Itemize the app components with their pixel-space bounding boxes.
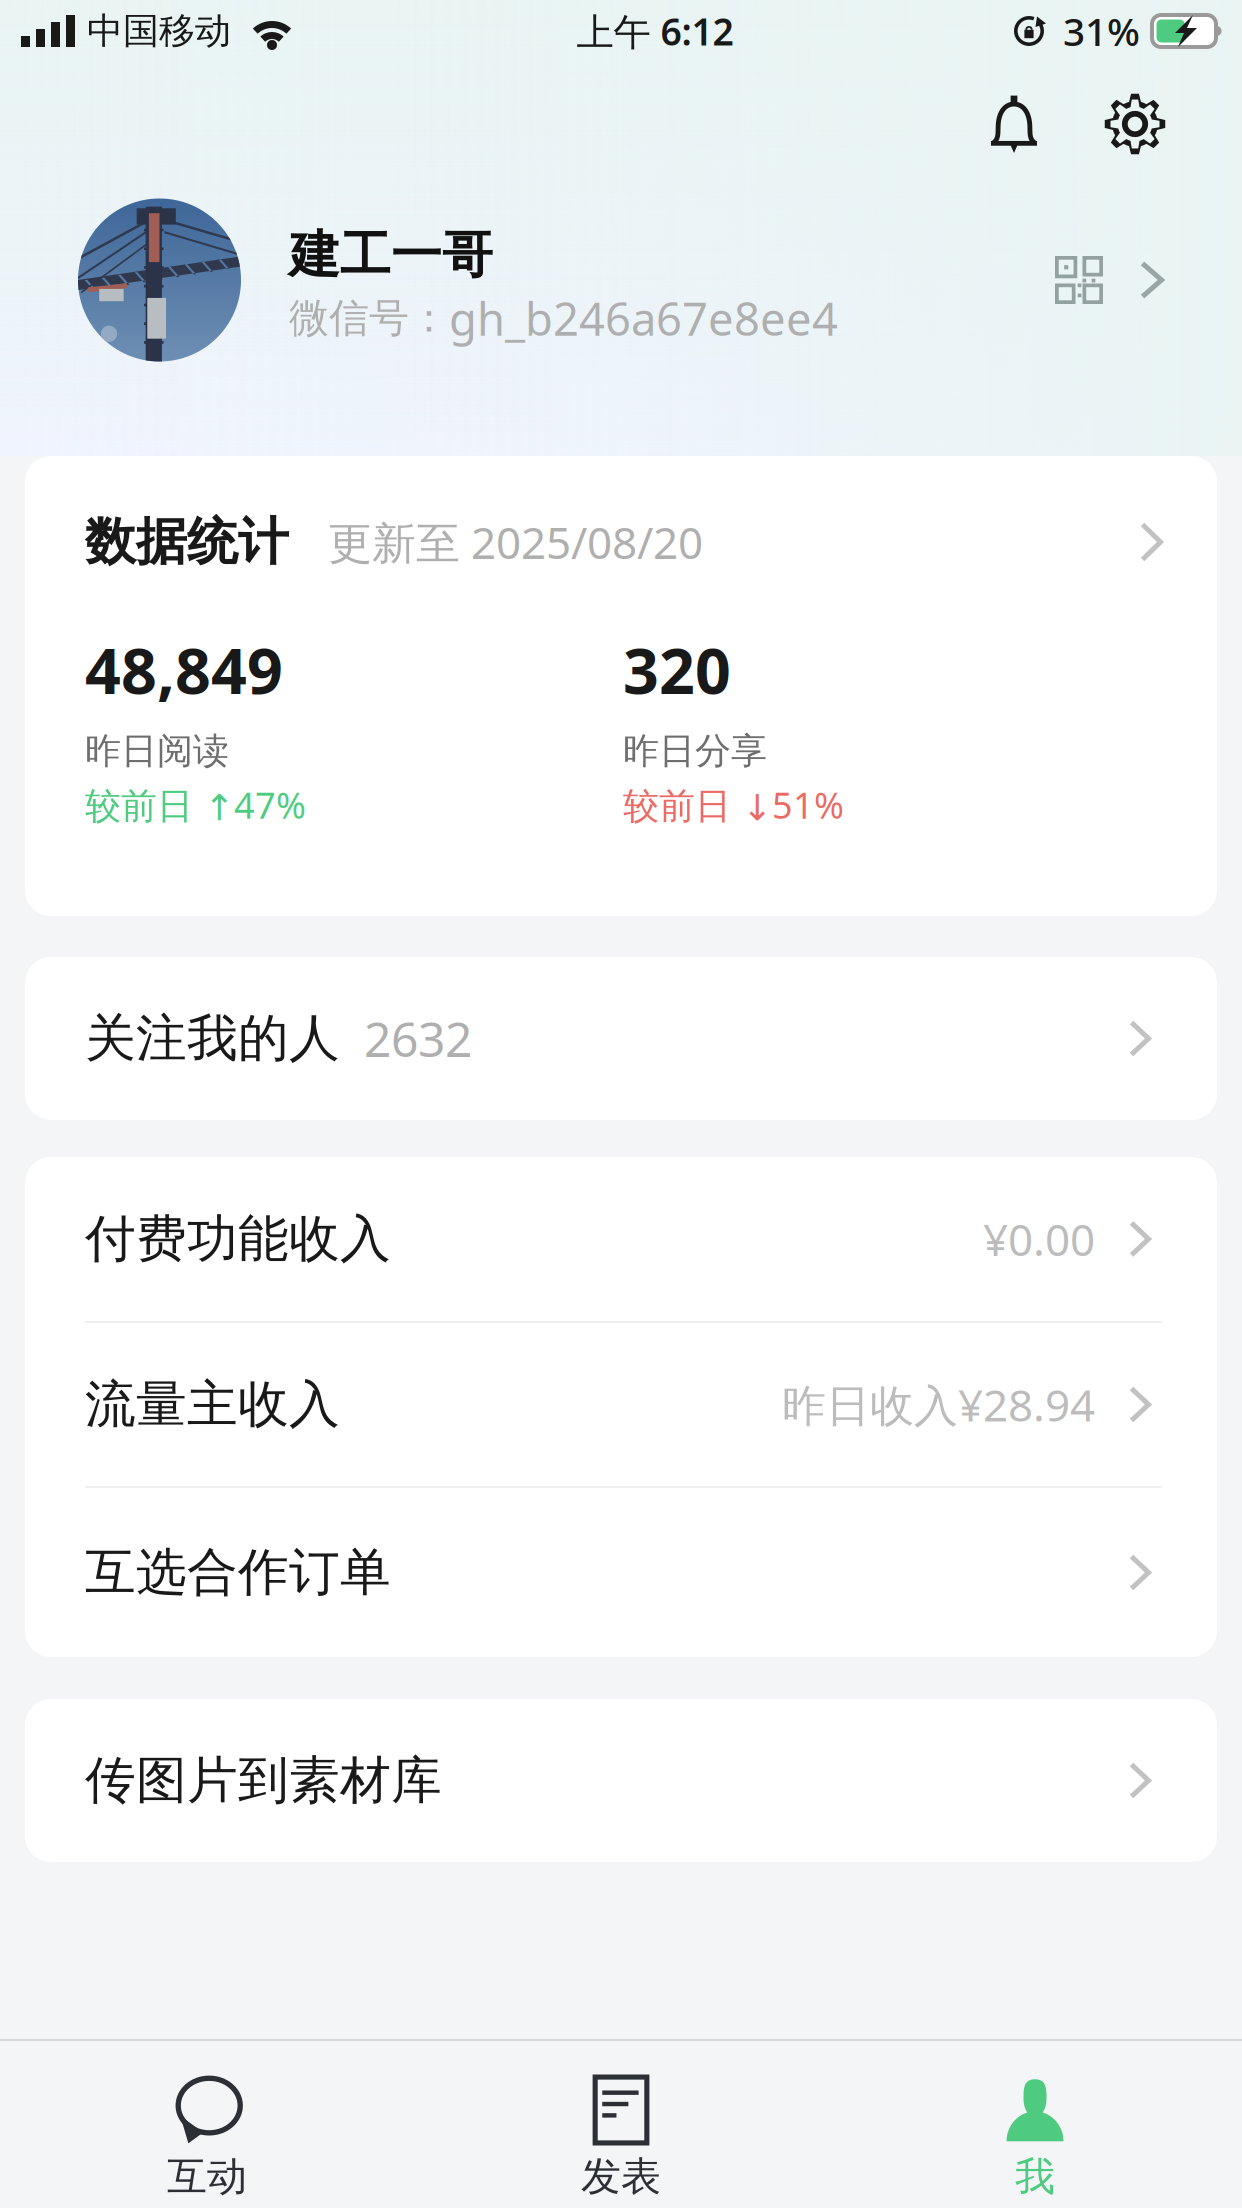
staticText: ¥0.00	[983, 1210, 1095, 1268]
staticText: 关注我的人	[85, 1007, 340, 1070]
staticText: gh_b246a67e8ee4	[449, 288, 838, 348]
staticText: 320	[623, 628, 731, 711]
staticText: 上午 6:12	[576, 6, 733, 56]
button[interactable]: 传图片到素材库	[25, 1699, 1217, 1862]
button[interactable]: 建工一哥	[0, 186, 1242, 374]
staticText: 中国移动	[87, 9, 231, 53]
staticText: 建工一哥	[289, 224, 493, 286]
staticText: 昨日阅读	[85, 729, 229, 773]
staticText: 31%	[1063, 5, 1140, 57]
button[interactable]: 互选合作订单	[25, 1488, 1217, 1657]
staticText: 流量主收入	[85, 1373, 340, 1436]
button[interactable]: 我	[828, 2041, 1242, 2208]
staticText: 较前日 ↑47%	[85, 781, 306, 829]
staticText: 互动	[167, 2152, 247, 2201]
staticText: 数据统计	[85, 511, 289, 573]
staticText: 传图片到素材库	[85, 1749, 442, 1812]
staticText: 发表	[581, 2152, 661, 2201]
staticText: 我	[1015, 2152, 1055, 2201]
staticText: 更新至 2025/08/20	[289, 513, 703, 571]
staticText: 互选合作订单	[85, 1541, 391, 1604]
staticText: 较前日 ↓51%	[623, 781, 844, 829]
staticText: 48,849	[85, 628, 283, 711]
button[interactable]: 付费功能收入	[25, 1157, 1217, 1321]
button[interactable]: 互动	[0, 2041, 414, 2208]
button[interactable]: 关注我的人	[25, 957, 1217, 1120]
button[interactable]: Settings	[1079, 62, 1191, 186]
button[interactable]: 流量主收入	[25, 1323, 1217, 1486]
button[interactable]: Notifications	[949, 62, 1079, 186]
staticText: 2632	[340, 1007, 472, 1070]
button[interactable]: 发表	[414, 2041, 828, 2208]
staticText: 微信号：	[289, 293, 449, 343]
button[interactable]: 数据统计	[25, 456, 1217, 628]
staticText: 昨日收入¥28.94	[782, 1375, 1095, 1434]
staticText: 昨日分享	[623, 729, 767, 773]
staticText: 付费功能收入	[85, 1208, 391, 1270]
